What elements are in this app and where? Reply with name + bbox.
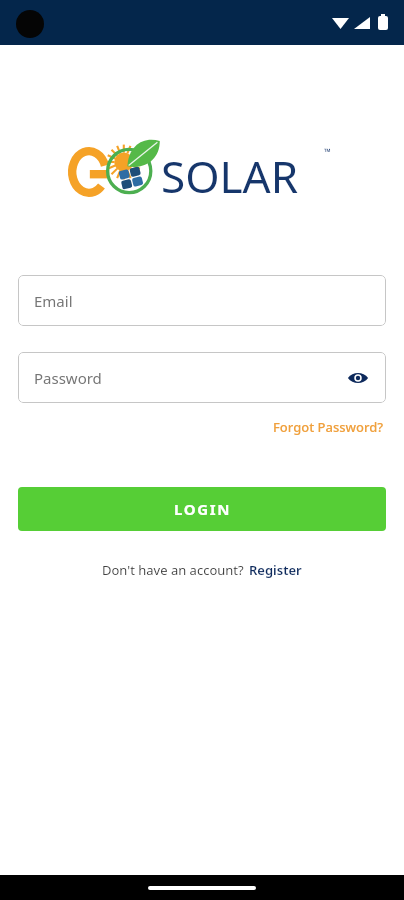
staticText: Register [249, 561, 302, 579]
staticText: Email [34, 291, 73, 311]
staticText: ™ [324, 145, 331, 157]
button[interactable]: LOGIN [18, 487, 386, 531]
button[interactable]: Password [18, 352, 386, 403]
staticText: SOLAR [161, 146, 299, 206]
button[interactable]: Forgot Password? [271, 415, 386, 439]
button[interactable]: Email [18, 275, 386, 326]
button[interactable]: Show password [340, 360, 376, 396]
button[interactable]: Register [248, 559, 303, 581]
staticText: Password [34, 368, 102, 388]
staticText: Forgot Password? [273, 418, 384, 436]
staticText: Don't have an account? [102, 561, 248, 579]
staticText: LOGIN [174, 499, 231, 519]
